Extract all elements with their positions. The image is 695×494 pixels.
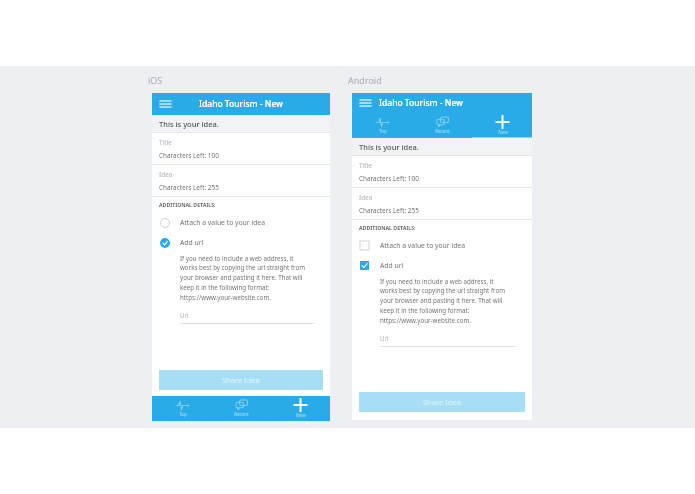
staticText: Attach a value to your idea [180, 218, 265, 227]
button[interactable]: Add url [159, 232, 330, 252]
button[interactable]: New [472, 113, 532, 138]
staticText: If you need to include a web address, it… [380, 277, 505, 325]
button[interactable]: Add url [359, 255, 532, 275]
button[interactable]: Share Idea [159, 370, 323, 390]
staticText: Add url [180, 238, 204, 247]
staticText: Top [179, 411, 187, 417]
staticText: Add url [380, 261, 404, 270]
button[interactable]: Top [352, 113, 412, 138]
staticText: Recent [435, 128, 450, 134]
staticText: Characters Left: 100 [159, 151, 219, 160]
staticText: Url [180, 311, 189, 319]
staticText: New [296, 412, 306, 418]
staticText: New [498, 129, 508, 135]
staticText: Top [379, 128, 387, 134]
staticText: Url [380, 334, 389, 342]
button[interactable]: Menu [158, 97, 172, 111]
staticText: Idea [359, 193, 373, 202]
staticText: ADDITIONAL DETAILS: [359, 224, 416, 231]
staticText: If you need to include a web address, it… [180, 254, 305, 302]
staticText: iOS [148, 74, 163, 86]
staticText: This is your idea. [159, 119, 219, 129]
button[interactable]: Title [159, 138, 330, 160]
staticText: Characters Left: 255 [359, 206, 419, 215]
button[interactable]: Attach a value to your idea [159, 212, 330, 232]
staticText: Attach a value to your idea [380, 241, 465, 250]
staticText: Title [159, 138, 172, 147]
button[interactable]: Recent [212, 396, 271, 421]
staticText: Share Idea [423, 397, 461, 407]
button[interactable]: Title [359, 161, 532, 183]
staticText: Idaho Tourism - New [379, 97, 463, 109]
staticText: Share Idea [222, 375, 260, 385]
button[interactable]: Top [152, 396, 212, 421]
staticText: ADDITIONAL DETAILS: [159, 201, 216, 208]
button[interactable]: Idea [159, 170, 330, 192]
staticText: Recent [234, 411, 249, 417]
button[interactable]: Share Idea [359, 392, 525, 412]
button[interactable]: Idea [359, 193, 532, 215]
button[interactable]: Recent [412, 113, 472, 138]
button[interactable]: Menu [358, 96, 372, 110]
staticText: This is your idea. [359, 142, 419, 152]
staticText: Characters Left: 255 [159, 183, 219, 192]
staticText: Title [359, 161, 372, 170]
button[interactable]: New [271, 396, 330, 421]
staticText: Characters Left: 100 [359, 174, 419, 183]
button[interactable]: Attach a value to your idea [359, 235, 532, 255]
staticText: Android [348, 74, 382, 86]
staticText: Idaho Tourism - New [199, 98, 283, 110]
staticText: Idea [159, 170, 173, 179]
